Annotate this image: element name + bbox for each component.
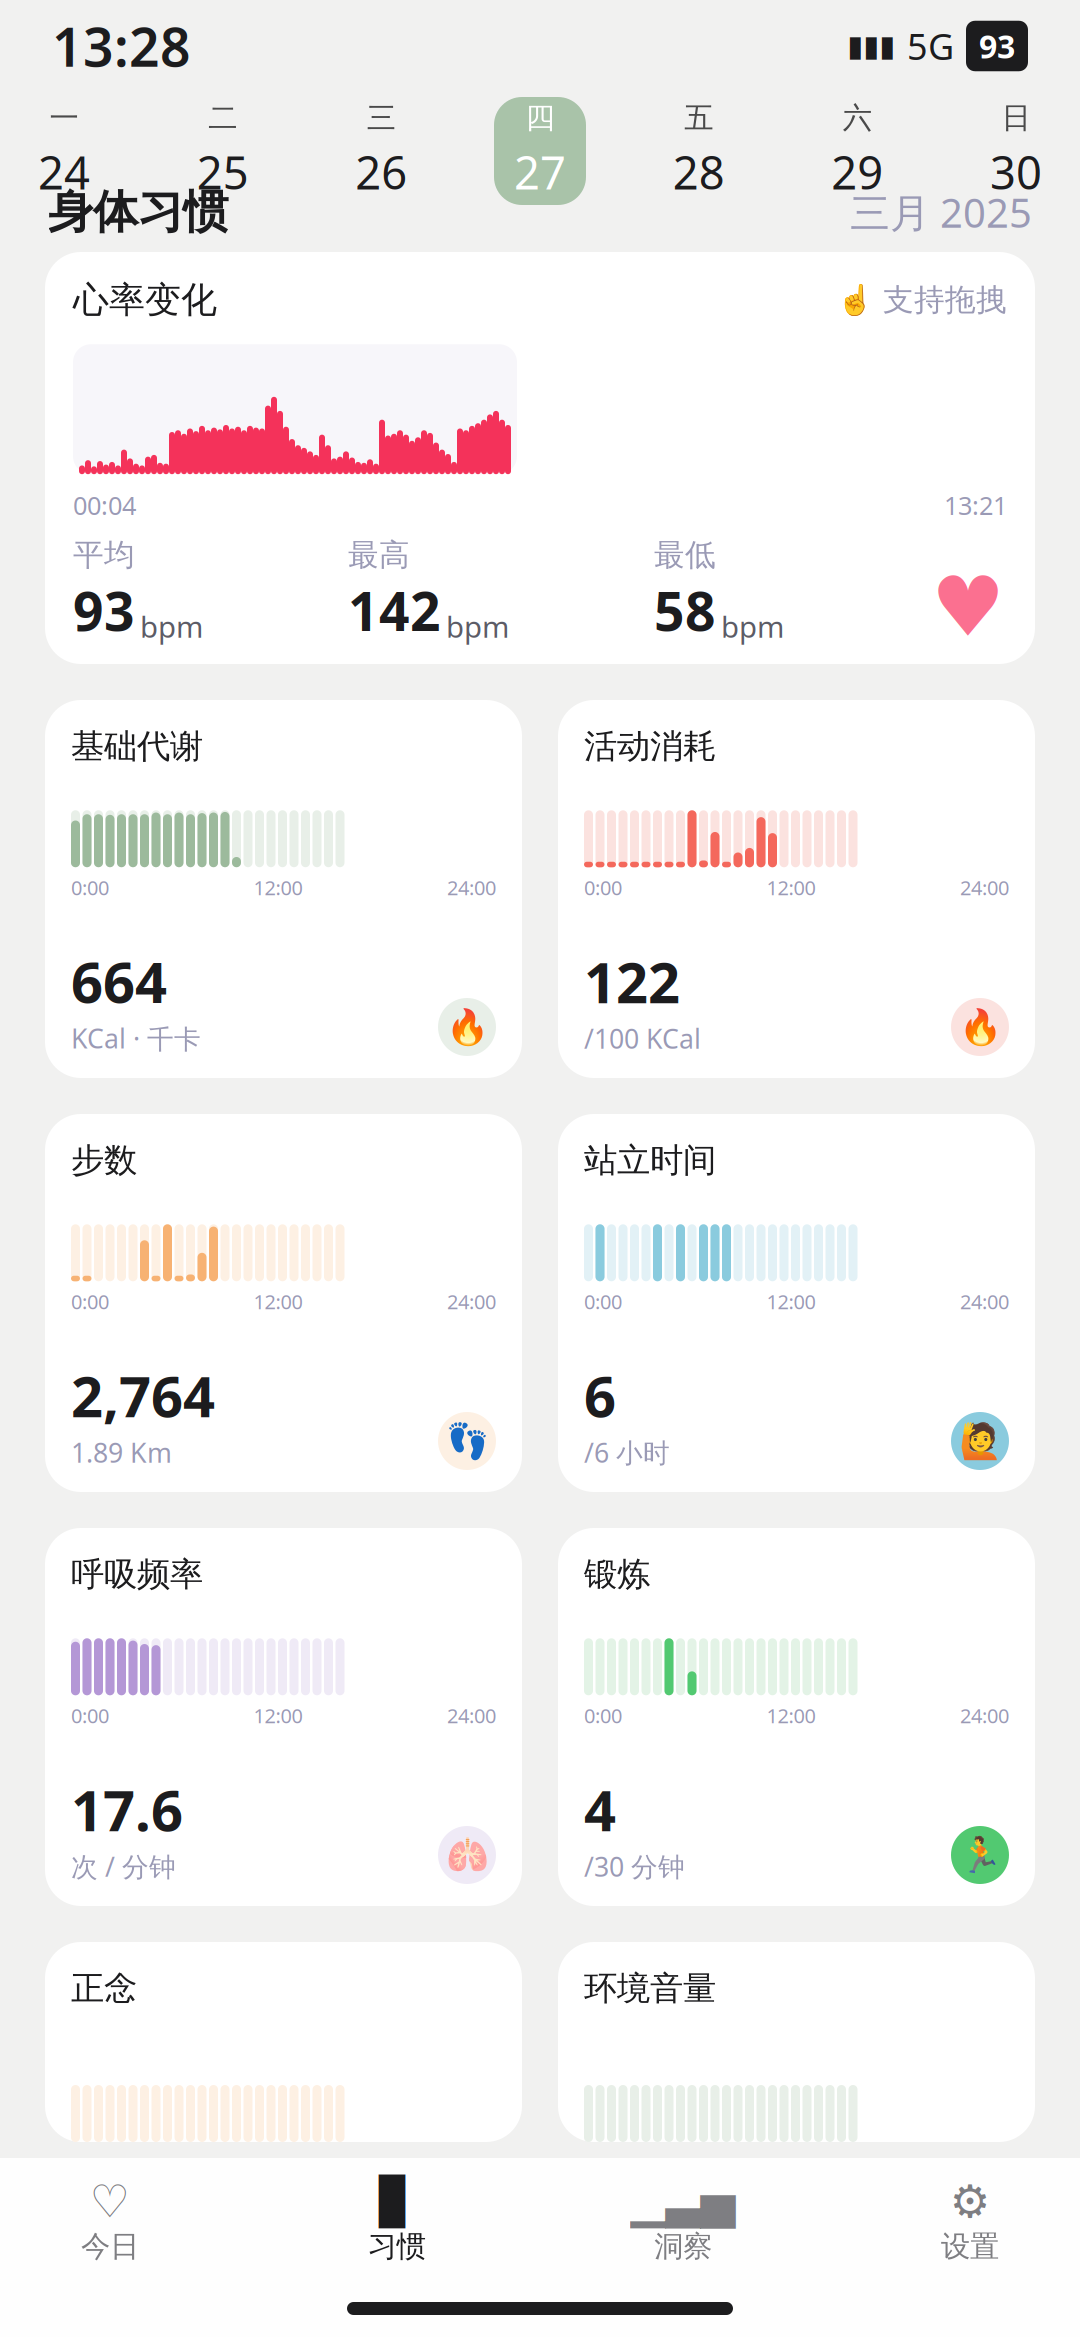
staticText: 58 bbox=[654, 575, 716, 646]
staticText: /100 KCal bbox=[584, 1021, 701, 1056]
staticText: KCal · 千卡 bbox=[71, 1020, 201, 1056]
staticText: 设置 bbox=[941, 2228, 999, 2264]
staticText: 17.6 bbox=[71, 1772, 183, 1847]
staticText: 1.89 Km bbox=[71, 1435, 172, 1470]
staticText: ▁▃▅ bbox=[631, 2176, 736, 2227]
staticText: 0:00 bbox=[584, 1288, 622, 1315]
staticText: 二 bbox=[208, 100, 237, 136]
staticText: 5G bbox=[907, 22, 954, 70]
staticText: 12:00 bbox=[253, 1288, 302, 1315]
button[interactable]: 四 bbox=[494, 97, 586, 205]
button[interactable]: ♡ bbox=[10, 2171, 210, 2275]
button[interactable]: 锻炼 bbox=[558, 1528, 1035, 1906]
staticText: bpm bbox=[446, 607, 509, 646]
staticText: 基础代谢 bbox=[71, 726, 203, 767]
staticText: 站立时间 bbox=[584, 1140, 716, 1181]
staticText: 支持拖拽 bbox=[874, 281, 1007, 319]
staticText: 五 bbox=[684, 100, 713, 136]
staticText: /6 小时 bbox=[584, 1435, 670, 1470]
staticText: 最低 bbox=[654, 536, 716, 574]
staticText: 28 bbox=[673, 142, 725, 202]
button[interactable]: 正念 bbox=[45, 1942, 522, 2142]
staticText: /30 分钟 bbox=[584, 1849, 685, 1884]
staticText: 六 bbox=[843, 100, 872, 136]
button[interactable]: 环境音量 bbox=[558, 1942, 1035, 2142]
staticText: 27 bbox=[514, 142, 566, 202]
staticText: 身体习惯 bbox=[48, 184, 228, 240]
button[interactable]: 呼吸频率 bbox=[45, 1528, 522, 1906]
staticText: 30 bbox=[990, 142, 1042, 202]
staticText: 习惯 bbox=[368, 2228, 426, 2264]
staticText: 00:04 bbox=[73, 488, 136, 522]
staticText: 0:00 bbox=[584, 874, 622, 901]
staticText: 24:00 bbox=[447, 874, 496, 901]
staticText: 4 bbox=[584, 1772, 616, 1847]
staticText: 6 bbox=[584, 1358, 616, 1433]
staticText: 12:00 bbox=[766, 1288, 815, 1315]
staticText: 0:00 bbox=[71, 1702, 109, 1729]
staticText: 24:00 bbox=[960, 874, 1009, 901]
staticText: 0:00 bbox=[584, 1702, 622, 1729]
staticText: 24:00 bbox=[960, 1288, 1009, 1315]
button[interactable]: ▁▃▅ bbox=[583, 2171, 783, 2275]
staticText: 今日 bbox=[81, 2228, 139, 2264]
staticText: ♥ bbox=[931, 560, 1005, 654]
button[interactable]: 日 bbox=[970, 97, 1062, 205]
staticText: 🏃 bbox=[958, 1835, 1001, 1875]
staticText: 12:00 bbox=[766, 1702, 815, 1729]
button[interactable]: 心率变化 bbox=[45, 252, 1035, 664]
staticText: 🔥 bbox=[445, 1007, 488, 1047]
staticText: 12:00 bbox=[253, 874, 302, 901]
staticText: 洞察 bbox=[654, 2228, 712, 2264]
staticText: bpm bbox=[140, 607, 203, 646]
staticText: 93 bbox=[73, 575, 135, 646]
staticText: 四 bbox=[525, 100, 554, 136]
staticText: 正念 bbox=[71, 1968, 137, 2009]
staticText: 24 bbox=[38, 142, 90, 202]
staticText: 142 bbox=[348, 575, 441, 646]
staticText: 24:00 bbox=[447, 1702, 496, 1729]
button[interactable]: 基础代谢 bbox=[45, 700, 522, 1078]
staticText: 三 bbox=[367, 100, 396, 136]
staticText: ☝ bbox=[837, 283, 874, 317]
staticText: 🫁 bbox=[445, 1835, 488, 1875]
staticText: 一 bbox=[49, 100, 78, 136]
staticText: 次 / 分钟 bbox=[71, 1849, 176, 1884]
staticText: 25 bbox=[197, 142, 249, 202]
staticText: ▊ bbox=[379, 2176, 414, 2227]
button[interactable]: 三 bbox=[335, 97, 427, 205]
staticText: ♡ bbox=[89, 2176, 130, 2227]
button[interactable]: 一 bbox=[18, 97, 110, 205]
staticText: bpm bbox=[721, 607, 784, 646]
staticText: 👣 bbox=[445, 1421, 488, 1461]
button[interactable]: 步数 bbox=[45, 1114, 522, 1492]
staticText: 0:00 bbox=[71, 1288, 109, 1315]
button[interactable]: 五 bbox=[653, 97, 745, 205]
staticText: 步数 bbox=[71, 1140, 137, 1181]
staticText: 活动消耗 bbox=[584, 726, 716, 767]
staticText: 平均 bbox=[73, 536, 135, 574]
button[interactable]: 六 bbox=[811, 97, 903, 205]
staticText: 日 bbox=[1001, 100, 1030, 136]
staticText: 2,764 bbox=[71, 1358, 215, 1433]
staticText: 🔥 bbox=[958, 1007, 1001, 1047]
staticText: 93 bbox=[979, 25, 1015, 67]
staticText: 13:21 bbox=[944, 488, 1007, 522]
staticText: 24:00 bbox=[960, 1702, 1009, 1729]
staticText: 12:00 bbox=[766, 874, 815, 901]
button[interactable]: 二 bbox=[177, 97, 269, 205]
staticText: ⚙ bbox=[949, 2176, 990, 2227]
button[interactable]: ▊ bbox=[297, 2171, 497, 2275]
staticText: ▮▮▮ bbox=[847, 29, 895, 63]
button[interactable]: 站立时间 bbox=[558, 1114, 1035, 1492]
staticText: 呼吸频率 bbox=[71, 1554, 203, 1595]
staticText: 三月 2025 bbox=[850, 186, 1032, 239]
staticText: 心率变化 bbox=[73, 278, 217, 322]
staticText: 664 bbox=[71, 944, 167, 1018]
staticText: 122 bbox=[584, 944, 680, 1019]
staticText: 12:00 bbox=[253, 1702, 302, 1729]
staticText: 锻炼 bbox=[584, 1554, 650, 1595]
button[interactable]: ⚙ bbox=[870, 2171, 1070, 2275]
button[interactable]: 活动消耗 bbox=[558, 700, 1035, 1078]
staticText: 最高 bbox=[348, 536, 410, 574]
